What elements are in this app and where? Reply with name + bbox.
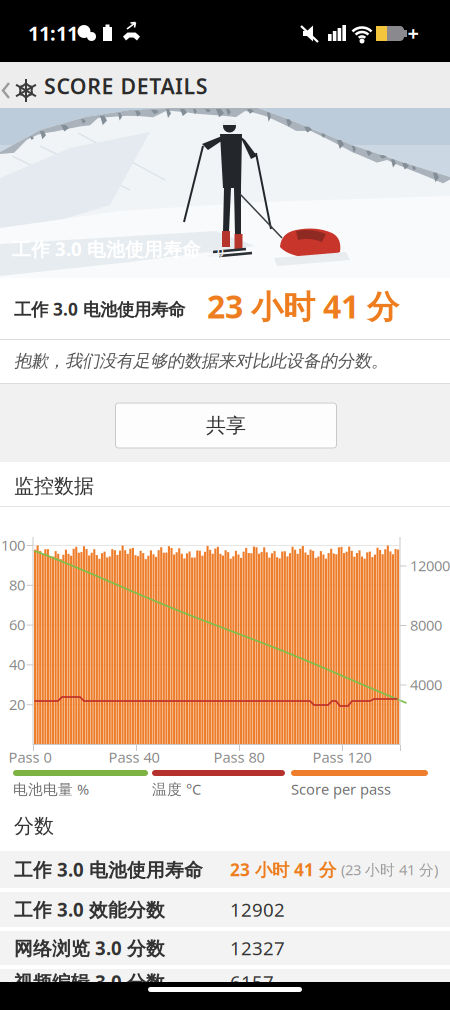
- staticText: SCORE DETAILS: [44, 72, 208, 100]
- staticText: 分数: [14, 814, 54, 838]
- staticText: 12902: [230, 897, 285, 922]
- staticText: 工作 3.0 效能分数: [14, 897, 165, 922]
- button[interactable]: 工作 3.0 效能分数: [0, 892, 450, 927]
- staticText: 8000: [410, 615, 442, 635]
- staticText: Pass 120: [312, 747, 371, 767]
- staticText: 80: [9, 575, 25, 595]
- staticText: 23 小时 41 分: [230, 858, 336, 881]
- button[interactable]: [0, 0, 450, 1010]
- staticText: 温度 °C: [152, 779, 201, 799]
- button[interactable]: 共享: [115, 402, 337, 448]
- staticText: 23 小时 41 分: [207, 285, 399, 327]
- staticText: 4000: [410, 675, 442, 694]
- staticText: 抱歉，我们没有足够的数据来对比此设备的分数。: [14, 350, 388, 372]
- staticText: 12000: [410, 556, 450, 575]
- staticText: 100: [1, 535, 25, 555]
- staticText: 60: [9, 615, 25, 634]
- button[interactable]: 视频编辑 3.0 分数: [0, 971, 450, 995]
- staticText: 6157: [230, 970, 274, 994]
- staticText: 20: [9, 694, 25, 714]
- staticText: Pass 0: [8, 747, 51, 767]
- staticText: 12327: [230, 936, 285, 960]
- staticText: 视频编辑 3.0 分数: [14, 970, 165, 994]
- staticText: Pass 80: [213, 747, 264, 767]
- button[interactable]: 网络浏览 3.0 分数: [0, 931, 450, 965]
- staticText: 工作 3.0 电池使用寿命: [14, 297, 185, 320]
- staticText: +: [407, 20, 418, 46]
- button[interactable]: 工作 3.0 电池使用寿命: [0, 851, 450, 888]
- staticText: 3.0: [207, 244, 224, 260]
- staticText: 11:11: [28, 20, 78, 46]
- staticText: 工作 3.0 电池使用寿命: [14, 857, 203, 882]
- staticText: 电池电量 %: [13, 779, 89, 799]
- staticText: 网络浏览 3.0 分数: [14, 936, 165, 960]
- staticText: Pass 40: [108, 747, 159, 767]
- staticText: 工作 3.0 电池使用寿命: [12, 237, 201, 261]
- staticText: Score per pass: [291, 779, 391, 799]
- staticText: 40: [9, 655, 25, 674]
- staticText: (23 小时 41 分): [341, 860, 438, 879]
- staticText: 共享: [206, 413, 246, 438]
- staticText: 监控数据: [14, 474, 94, 498]
